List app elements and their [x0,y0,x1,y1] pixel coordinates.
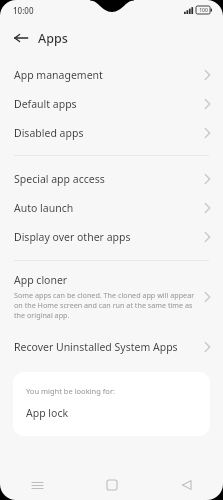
staticText: Recover Uninstalled System Apps [14,340,178,354]
button[interactable]: Display over other apps [0,222,223,251]
button[interactable]: App management [0,60,223,89]
staticText: 10:00 [13,5,34,16]
staticText: Display over other apps [14,230,131,244]
button[interactable]: Recent apps [0,470,75,500]
button[interactable]: Auto launch [0,193,223,222]
button[interactable]: App cloner [0,267,223,326]
staticText: App lock [26,406,69,420]
button[interactable]: Default apps [0,89,223,118]
button[interactable]: You might be looking for: [13,372,210,436]
staticText: Apps [38,30,68,47]
button[interactable]: Special app access [0,164,223,193]
button[interactable]: Home [75,470,149,500]
staticText: 100 [199,7,208,14]
button[interactable]: Disabled apps [0,118,223,147]
button[interactable]: Recover Uninstalled System Apps [0,334,223,360]
staticText: Default apps [14,97,77,111]
staticText: Disabled apps [14,126,84,140]
staticText: Special app access [14,172,105,186]
staticText: Some apps can be cloned. The cloned app … [14,290,198,320]
staticText: App cloner [14,273,68,287]
button[interactable]: Back [8,25,34,51]
staticText: You might be looking for: [26,386,116,396]
button[interactable]: Back [149,470,223,500]
staticText: App management [14,68,103,82]
staticText: Auto launch [14,201,74,215]
